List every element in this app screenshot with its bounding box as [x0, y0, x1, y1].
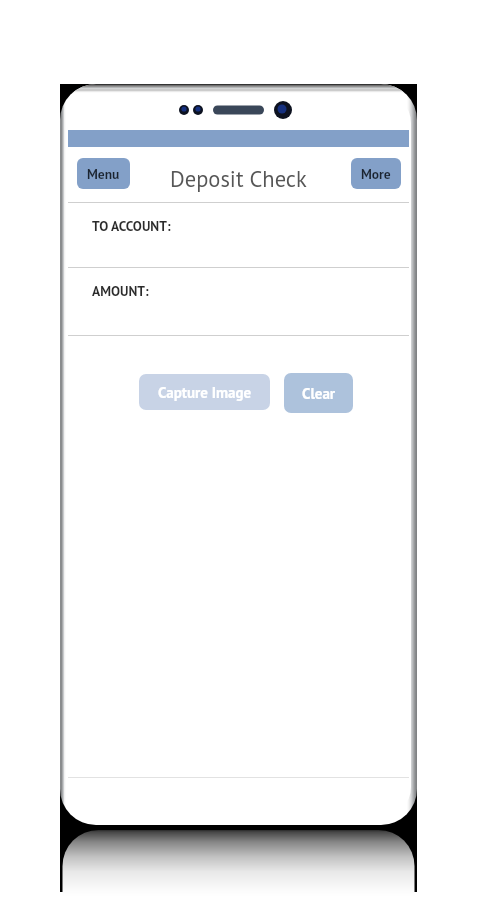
- button[interactable]: AMOUNT:: [68, 268, 409, 335]
- button[interactable]: More: [351, 158, 401, 189]
- button[interactable]: Menu: [77, 158, 130, 189]
- staticText: Clear: [302, 384, 336, 403]
- button[interactable]: Capture Image: [139, 374, 270, 410]
- staticText: TO ACCOUNT:: [92, 217, 171, 234]
- button[interactable]: TO ACCOUNT:: [68, 203, 409, 267]
- staticText: Menu: [87, 165, 120, 182]
- staticText: More: [361, 165, 391, 182]
- staticText: AMOUNT:: [92, 282, 149, 299]
- staticText: Capture Image: [158, 383, 252, 402]
- button[interactable]: Clear: [284, 373, 353, 413]
- staticText: Deposit Check: [170, 164, 307, 193]
